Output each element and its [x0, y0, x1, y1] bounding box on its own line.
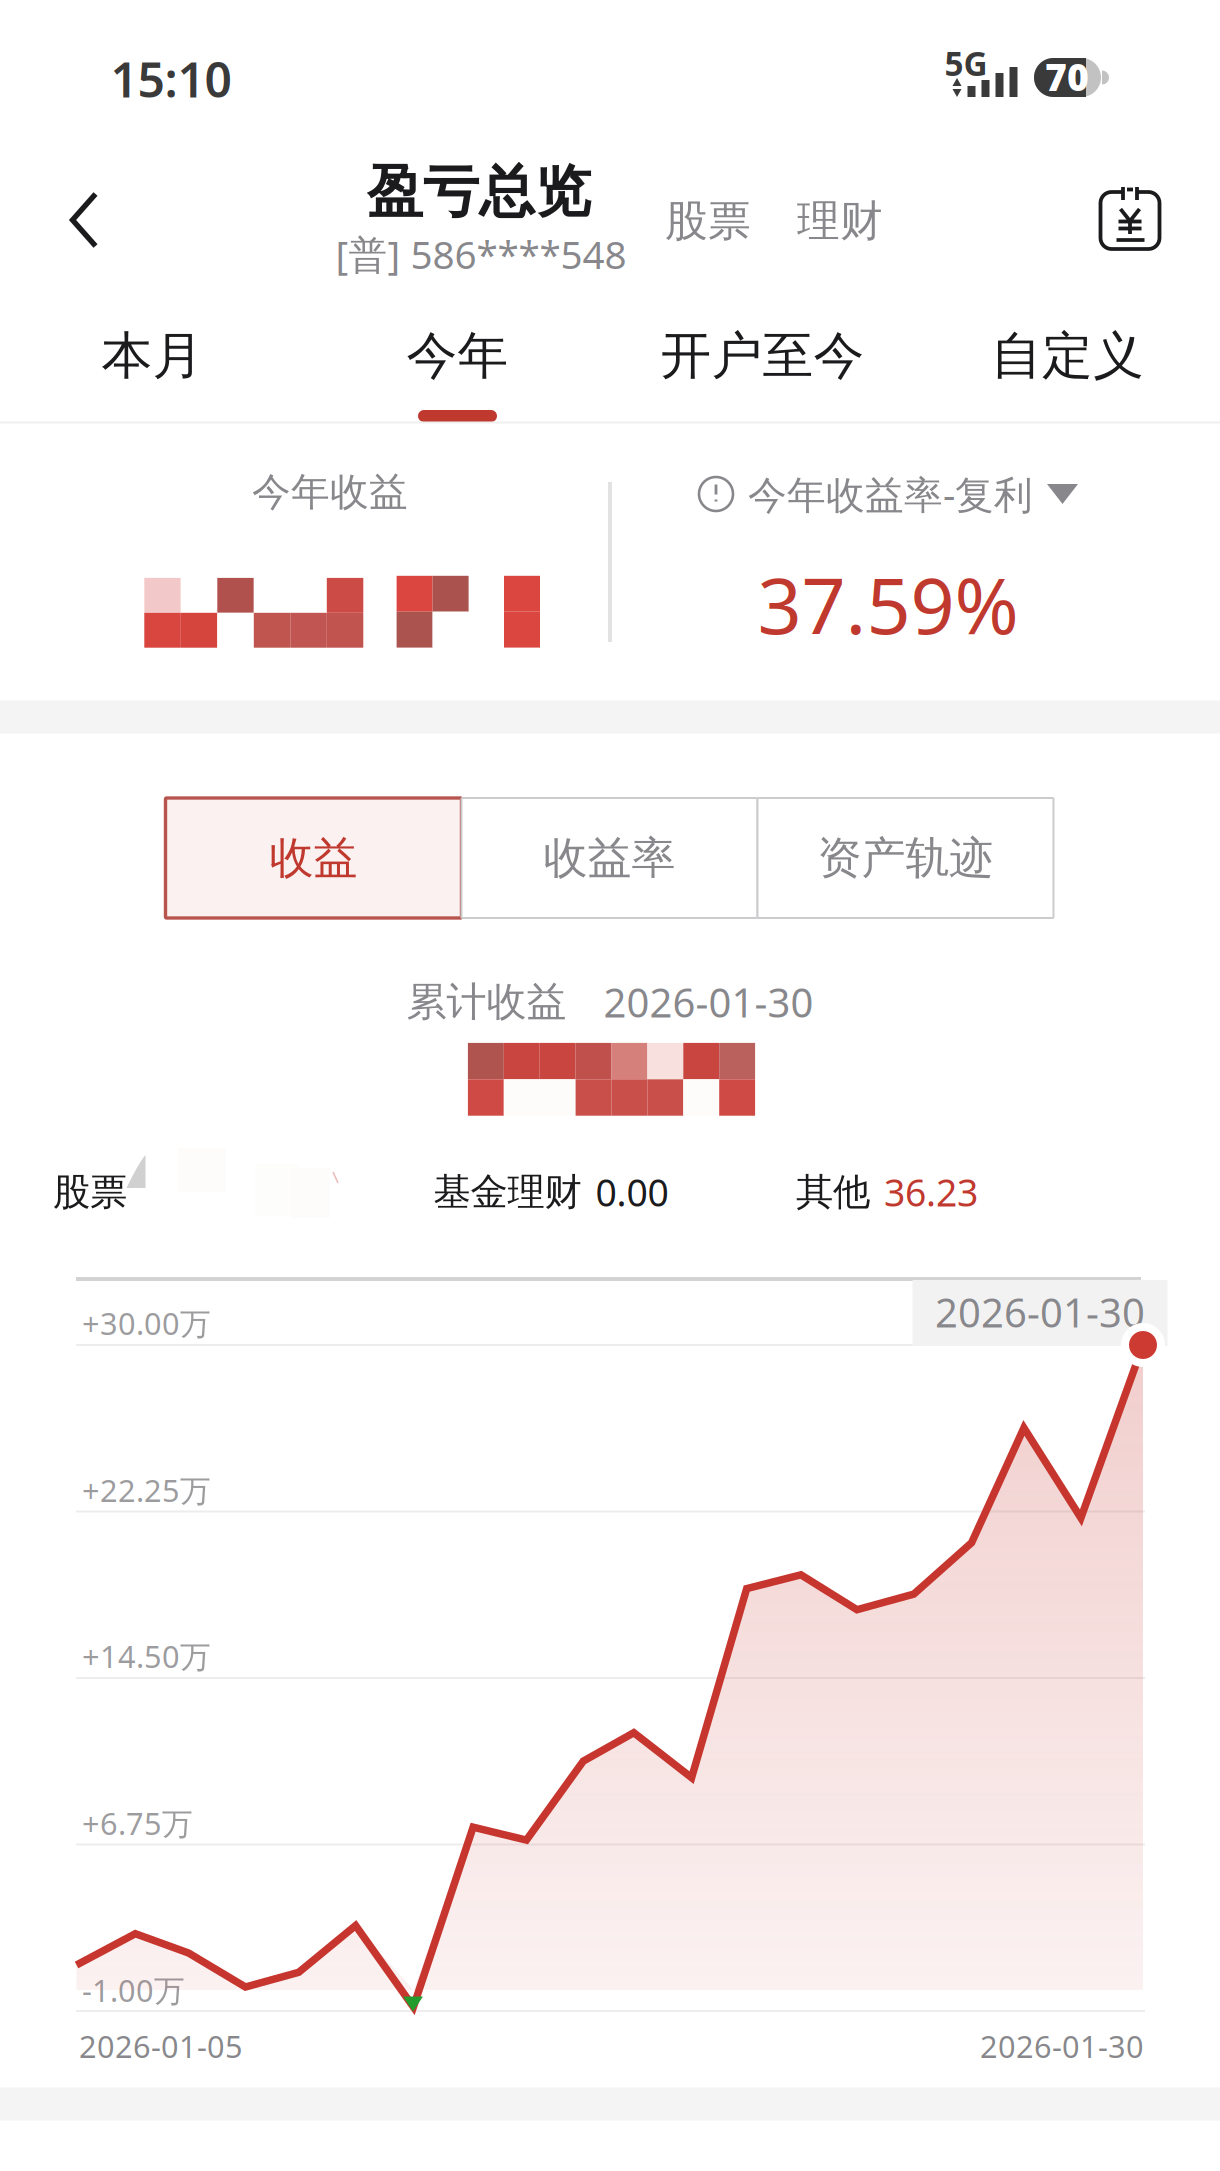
staticText: +30.00万 — [82, 1303, 211, 1343]
button[interactable]: 自定义 — [915, 310, 1220, 430]
staticText: 0.00 — [595, 1167, 668, 1217]
button[interactable]: 本月 — [0, 310, 305, 430]
staticText: 2026-01-05 — [79, 2026, 243, 2066]
staticText: 今年 — [406, 325, 508, 387]
staticText: 自定义 — [991, 325, 1144, 387]
button[interactable]: 股票 — [665, 195, 883, 247]
button[interactable]: Back — [36, 172, 132, 268]
staticText: 股票 — [665, 195, 751, 247]
staticText: -1.00万 — [82, 1970, 185, 2010]
staticText: 2026-01-30 — [935, 1285, 1145, 1338]
button[interactable]: 资产轨迹 — [757, 798, 1053, 918]
staticText: 累计收益 — [406, 977, 566, 1026]
staticText: 开户至今 — [660, 325, 864, 387]
staticText: 5G — [944, 41, 987, 85]
staticText: 今年收益率-复利 — [748, 468, 1033, 520]
staticText: 盈亏总览 — [367, 158, 591, 226]
button[interactable]: 收益率 — [461, 798, 757, 918]
button[interactable]: 收益 — [165, 798, 461, 918]
staticText: 70 — [1045, 52, 1089, 101]
staticText: 资产轨迹 — [817, 831, 993, 885]
staticText: 36.23 — [884, 1167, 978, 1217]
staticText: 收益率 — [543, 831, 675, 885]
staticText: 本月 — [101, 325, 203, 387]
staticText: 收益 — [269, 831, 357, 885]
staticText: 基金理财 — [433, 1169, 581, 1215]
staticText: +14.50万 — [82, 1636, 211, 1676]
staticText: 2026-01-30 — [603, 975, 813, 1028]
staticText: +22.25万 — [82, 1470, 211, 1510]
staticText: 股票 — [53, 1169, 127, 1215]
button[interactable]: 开户至今 — [610, 310, 915, 430]
staticText: 37.59% — [757, 553, 1018, 655]
staticText: 15:10 — [110, 47, 231, 111]
button[interactable]: 今年 — [305, 310, 610, 430]
staticText: [普] 586****548 — [335, 228, 626, 280]
button[interactable]: Statements — [1080, 169, 1180, 269]
staticText: 2026-01-30 — [980, 2026, 1144, 2066]
staticText: +6.75万 — [82, 1803, 193, 1843]
staticText: 今年收益 — [252, 468, 408, 516]
staticText: 理财 — [797, 195, 883, 247]
staticText: 其他 — [796, 1169, 870, 1215]
